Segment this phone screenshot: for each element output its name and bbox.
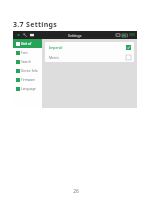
staticText: 9:05 [129, 33, 135, 37]
staticText: Metric [49, 55, 60, 60]
button[interactable]: Firmware Update [13, 75, 42, 84]
other: Not selected [126, 55, 131, 60]
button[interactable]: Font [13, 48, 42, 57]
staticText: Language [21, 87, 36, 91]
button[interactable]: Settings [22, 32, 28, 38]
button[interactable]: Search Engine [13, 57, 42, 66]
button[interactable]: Device Info [13, 66, 42, 75]
other: Selected [126, 45, 131, 50]
staticText: Unit of Measure [21, 42, 42, 46]
button[interactable]: Unit of Measure [13, 39, 42, 48]
staticText: Font [21, 51, 28, 55]
button[interactable]: Screenshot [29, 32, 35, 38]
button[interactable]: Metric [45, 52, 134, 62]
button[interactable]: Language [13, 84, 42, 93]
staticText: Search Engine [21, 60, 42, 64]
staticText: 26 [73, 188, 79, 195]
staticText: Imperial [49, 45, 63, 50]
staticText: Firmware Update [21, 78, 42, 82]
staticText: Device Info [21, 69, 38, 73]
staticText: 3.7 Settings [13, 20, 58, 30]
button[interactable]: Imperial [45, 42, 134, 52]
button[interactable]: Back [15, 32, 21, 38]
staticText: Settings [68, 33, 82, 38]
